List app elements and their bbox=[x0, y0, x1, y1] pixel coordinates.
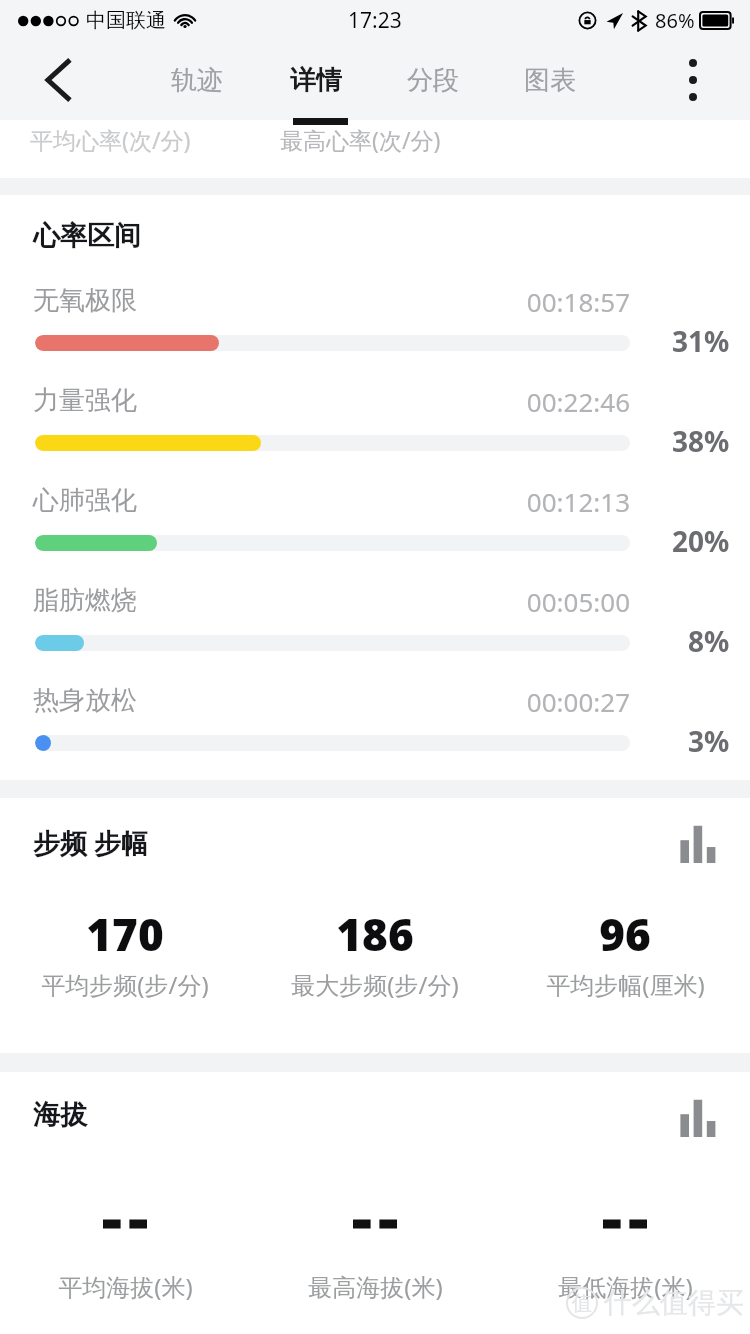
staticText: 00:05:00 bbox=[526, 584, 630, 619]
staticText: 00:00:27 bbox=[526, 684, 630, 719]
staticText: 170 bbox=[86, 904, 164, 964]
button[interactable]: 热身放松 bbox=[0, 684, 750, 780]
staticText: 17:23 bbox=[348, 6, 402, 35]
staticText: 186 bbox=[336, 904, 414, 964]
staticText: 平均海拔(米) bbox=[58, 1270, 193, 1303]
button[interactable]: 心肺强化 bbox=[0, 484, 750, 584]
staticText: 38% bbox=[672, 422, 730, 460]
staticText: 图表 bbox=[524, 64, 576, 97]
staticText: 最大步频(步/分) bbox=[291, 968, 459, 1001]
button[interactable]: 脂肪燃烧 bbox=[0, 584, 750, 684]
button[interactable]: 详情 bbox=[261, 40, 371, 120]
staticText: 什么值得买 bbox=[604, 1285, 744, 1320]
staticText: 3% bbox=[688, 722, 730, 760]
staticText: 心肺强化 bbox=[33, 484, 137, 517]
staticText: 力量强化 bbox=[33, 384, 137, 417]
staticText: 平均步频(步/分) bbox=[41, 968, 209, 1001]
staticText: 96 bbox=[599, 904, 651, 964]
staticText: 最高心率(次/分) bbox=[280, 124, 441, 155]
staticText: 20% bbox=[672, 522, 730, 560]
button[interactable]: 图表 bbox=[495, 40, 605, 120]
staticText: 00:18:57 bbox=[526, 284, 630, 319]
button[interactable]: 力量强化 bbox=[0, 384, 750, 484]
button[interactable]: 海拔图表 bbox=[666, 1086, 730, 1150]
staticText: 最低海拔(米) bbox=[558, 1270, 693, 1303]
button[interactable]: 更多选项 bbox=[658, 45, 728, 115]
staticText: 脂肪燃烧 bbox=[33, 584, 137, 617]
staticText: 00:22:46 bbox=[526, 384, 630, 419]
staticText: 轨迹 bbox=[171, 64, 223, 97]
button[interactable]: 步频步幅图表 bbox=[666, 812, 730, 876]
staticText: 心率区间 bbox=[33, 219, 141, 253]
button[interactable]: 轨迹 bbox=[142, 40, 252, 120]
staticText: 中国联通 bbox=[86, 8, 166, 33]
staticText: 无氧极限 bbox=[33, 284, 137, 317]
staticText: 海拔 bbox=[33, 1098, 87, 1132]
staticText: 最高海拔(米) bbox=[308, 1270, 443, 1303]
staticText: 详情 bbox=[290, 64, 342, 97]
staticText: 平均步幅(厘米) bbox=[546, 968, 705, 1001]
staticText: 00:12:13 bbox=[526, 484, 630, 519]
staticText: 31% bbox=[672, 322, 730, 360]
button[interactable]: 分段 bbox=[378, 40, 488, 120]
button[interactable]: 无氧极限 bbox=[0, 284, 750, 384]
staticText: 值 bbox=[572, 1291, 592, 1316]
staticText: 分段 bbox=[407, 64, 459, 97]
staticText: 步频 步幅 bbox=[33, 824, 149, 861]
staticText: 86% bbox=[655, 7, 695, 34]
staticText: 热身放松 bbox=[33, 684, 137, 717]
button[interactable]: 返回 bbox=[20, 42, 96, 118]
staticText: 8% bbox=[688, 622, 730, 660]
staticText: 平均心率(次/分) bbox=[30, 124, 191, 155]
